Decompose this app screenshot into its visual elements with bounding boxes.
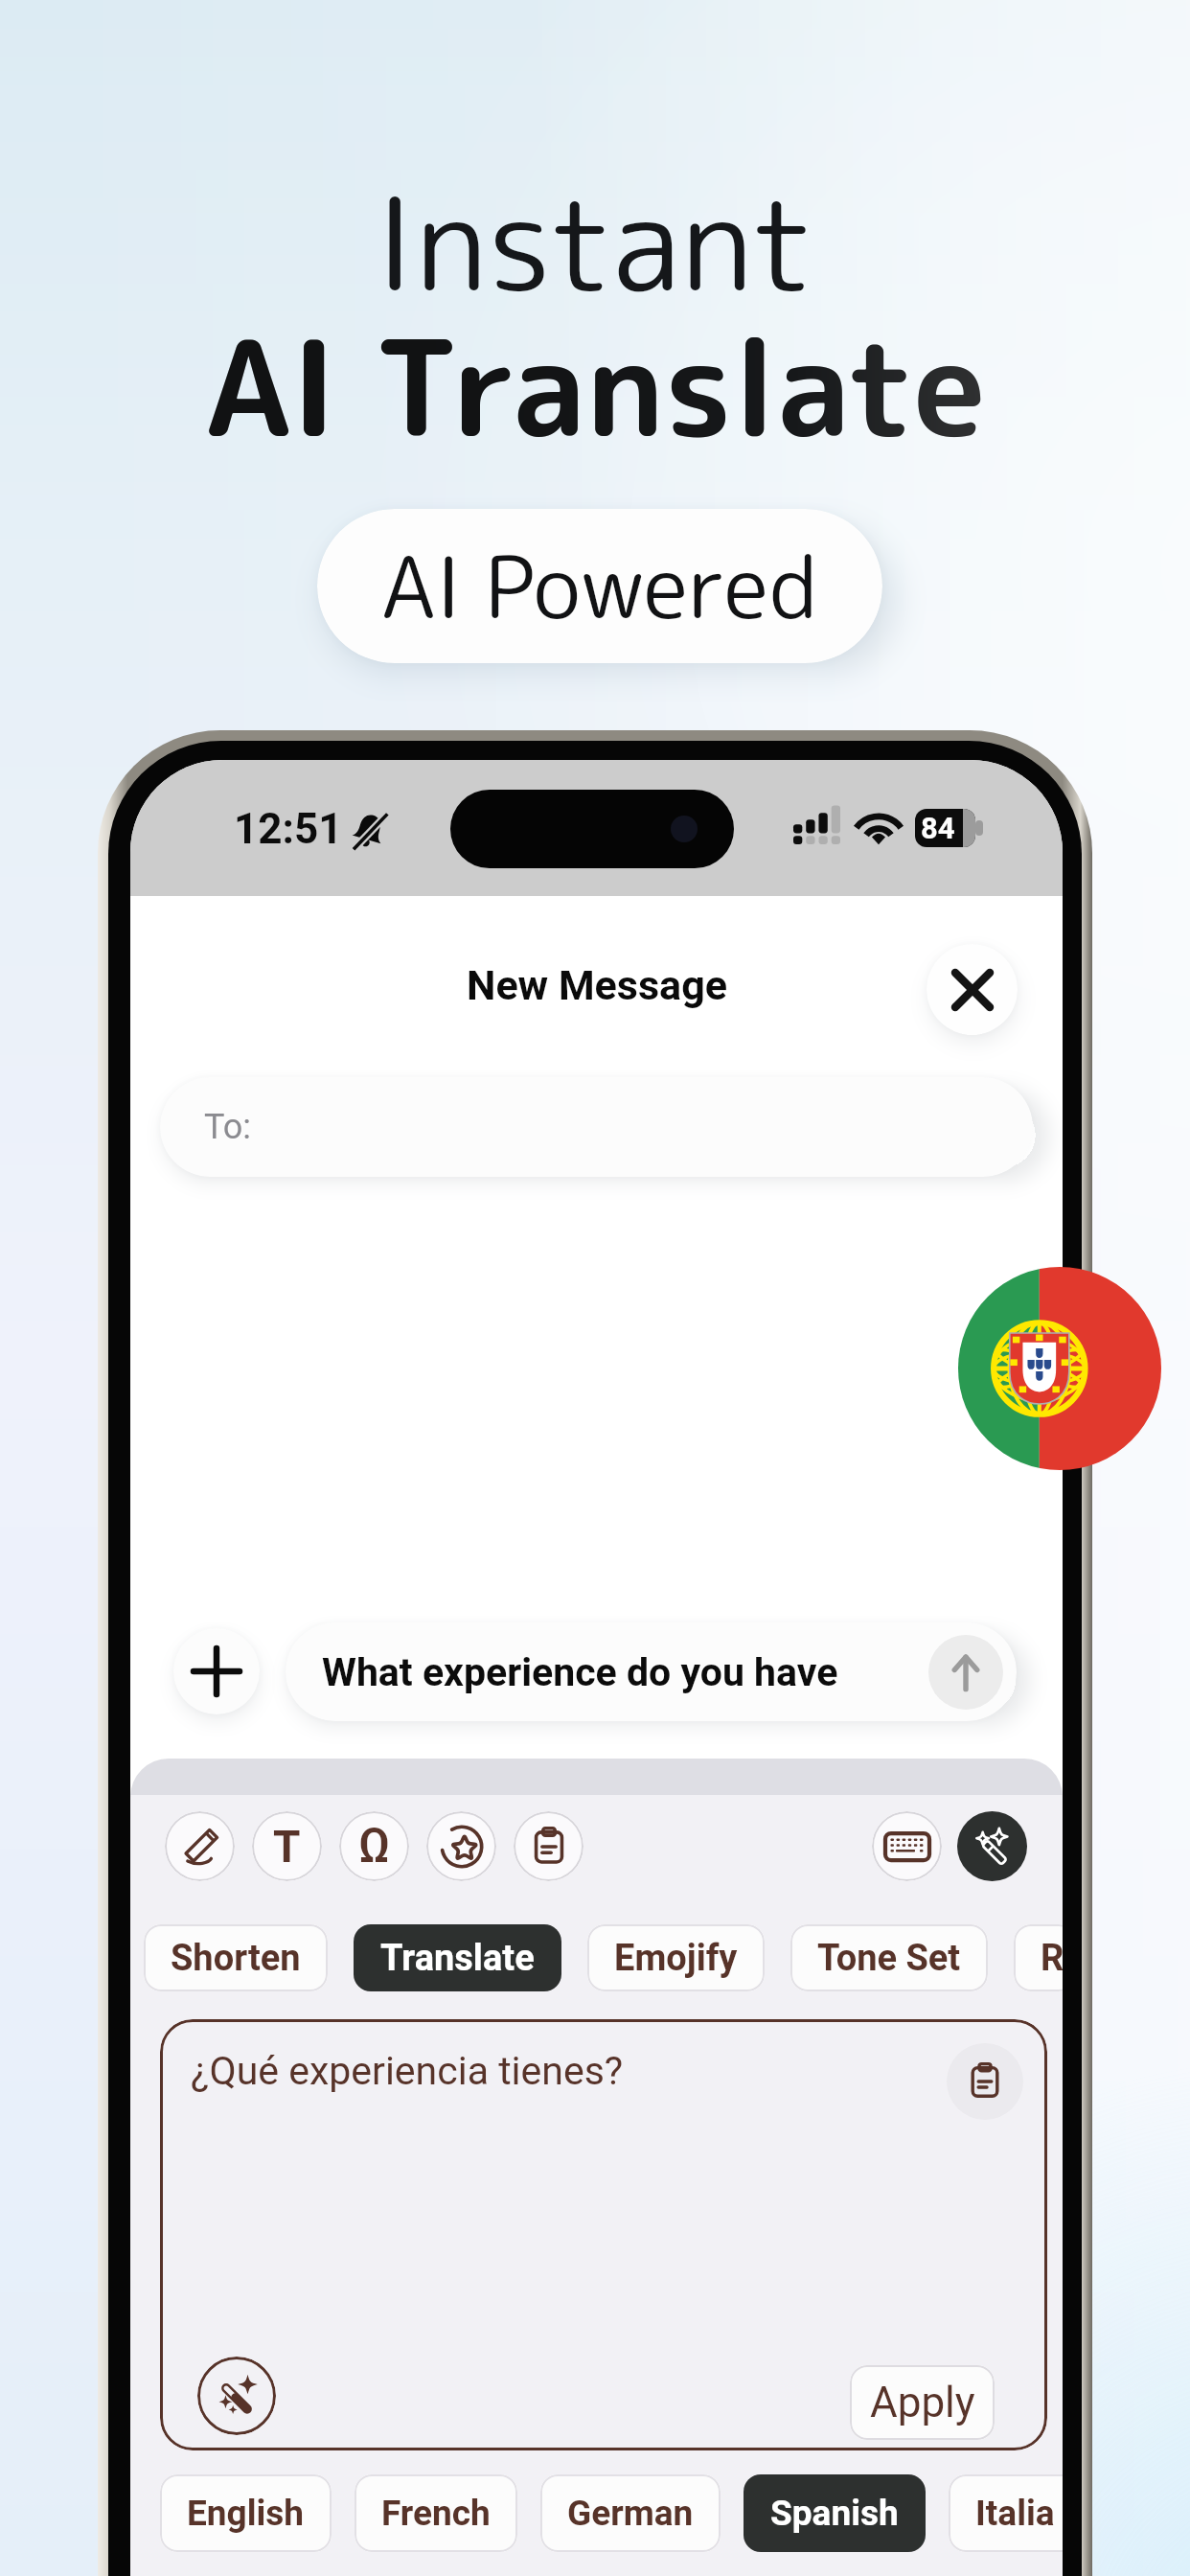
staticText: Rephrase	[1041, 1937, 1049, 1980]
button[interactable]: Tone Set	[790, 1924, 988, 1991]
button[interactable]: Tool	[165, 1811, 235, 1881]
button[interactable]: Shorten	[144, 1924, 328, 1991]
button[interactable]: Regenerate	[197, 2357, 276, 2435]
staticText: German	[567, 2493, 694, 2534]
staticText: AI Powered	[381, 527, 818, 645]
button[interactable]: French	[355, 2474, 517, 2552]
button[interactable]: Apply	[850, 2365, 995, 2440]
button[interactable]: Send	[928, 1635, 1003, 1710]
button[interactable]: Add attachment	[173, 1628, 260, 1714]
button[interactable]: Tool	[339, 1811, 409, 1881]
staticText: 84	[921, 811, 955, 845]
button[interactable]: Copy	[947, 2043, 1023, 2120]
button[interactable]: English	[160, 2474, 332, 2552]
staticText: Translate	[380, 1937, 535, 1980]
button[interactable]: What experience do you have	[286, 1622, 1017, 1721]
button[interactable]: Emojify	[587, 1924, 765, 1991]
button[interactable]: Rephrase	[1014, 1924, 1063, 1991]
staticText: ¿Qué experiencia tienes?	[191, 2048, 624, 2094]
staticText: Tone Set	[817, 1937, 961, 1980]
staticText: Instant	[375, 152, 815, 332]
staticText: What experience do you have	[322, 1649, 838, 1695]
staticText: 12:51	[234, 804, 343, 854]
staticText: Emojify	[614, 1937, 738, 1980]
staticText: AI Translate	[205, 295, 986, 478]
button[interactable]: AI Powered	[317, 509, 882, 663]
button[interactable]: Translate	[354, 1924, 561, 1991]
staticText: English	[187, 2493, 305, 2534]
button[interactable]: Tool	[514, 1811, 584, 1881]
staticText: French	[381, 2493, 491, 2534]
staticText: Ω	[358, 1818, 391, 1874]
button[interactable]: German	[540, 2474, 721, 2552]
button[interactable]: To:	[160, 1077, 1033, 1177]
button[interactable]: Tool	[426, 1811, 496, 1881]
button[interactable]: Tool	[872, 1811, 942, 1881]
staticText: Spanish	[770, 2493, 899, 2534]
button[interactable]: AI magic	[957, 1811, 1027, 1881]
staticText: Shorten	[171, 1937, 301, 1980]
button[interactable]: Portuguese flag	[958, 1267, 1161, 1470]
staticText: T	[273, 1821, 301, 1873]
staticText: New Message	[467, 961, 727, 1009]
staticText: To:	[204, 1107, 251, 1147]
button[interactable]: Close	[927, 944, 1018, 1035]
staticText: Apply	[870, 2378, 975, 2427]
button[interactable]: Spanish	[744, 2474, 926, 2552]
button[interactable]: Italian	[949, 2474, 1063, 2552]
staticText: Italian	[975, 2493, 1063, 2534]
button[interactable]: Tool	[252, 1811, 322, 1881]
